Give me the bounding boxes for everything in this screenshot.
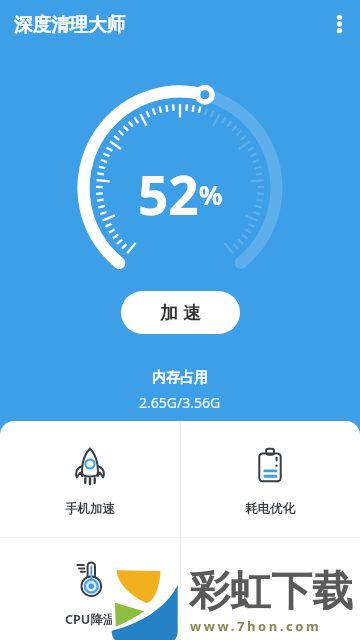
staticText: %: [199, 177, 223, 212]
staticText: 2.65G/3.56G: [139, 393, 221, 412]
staticText: 手机加速: [65, 501, 115, 517]
button[interactable]: 耗电优化: [180, 421, 360, 537]
staticText: 52: [138, 158, 199, 230]
staticText: 耗电优化: [245, 501, 295, 517]
button[interactable]: CPU降温: [0, 538, 180, 640]
button[interactable]: [180, 538, 360, 640]
staticText: www.7hon.com: [190, 617, 322, 635]
staticText: 加 速: [160, 300, 201, 325]
staticText: CPU降温: [65, 611, 116, 628]
staticText: 彩虹下载: [189, 566, 353, 618]
staticText: 深度清理大师: [14, 13, 125, 36]
button[interactable]: 手机加速: [0, 421, 180, 537]
staticText: 内存占用: [152, 369, 208, 387]
button[interactable]: 加 速: [121, 291, 240, 334]
button[interactable]: More options: [316, 2, 360, 46]
